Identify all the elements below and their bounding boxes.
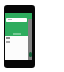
button[interactable]	[6, 18, 27, 22]
button[interactable]: Compose	[29, 52, 32, 57]
